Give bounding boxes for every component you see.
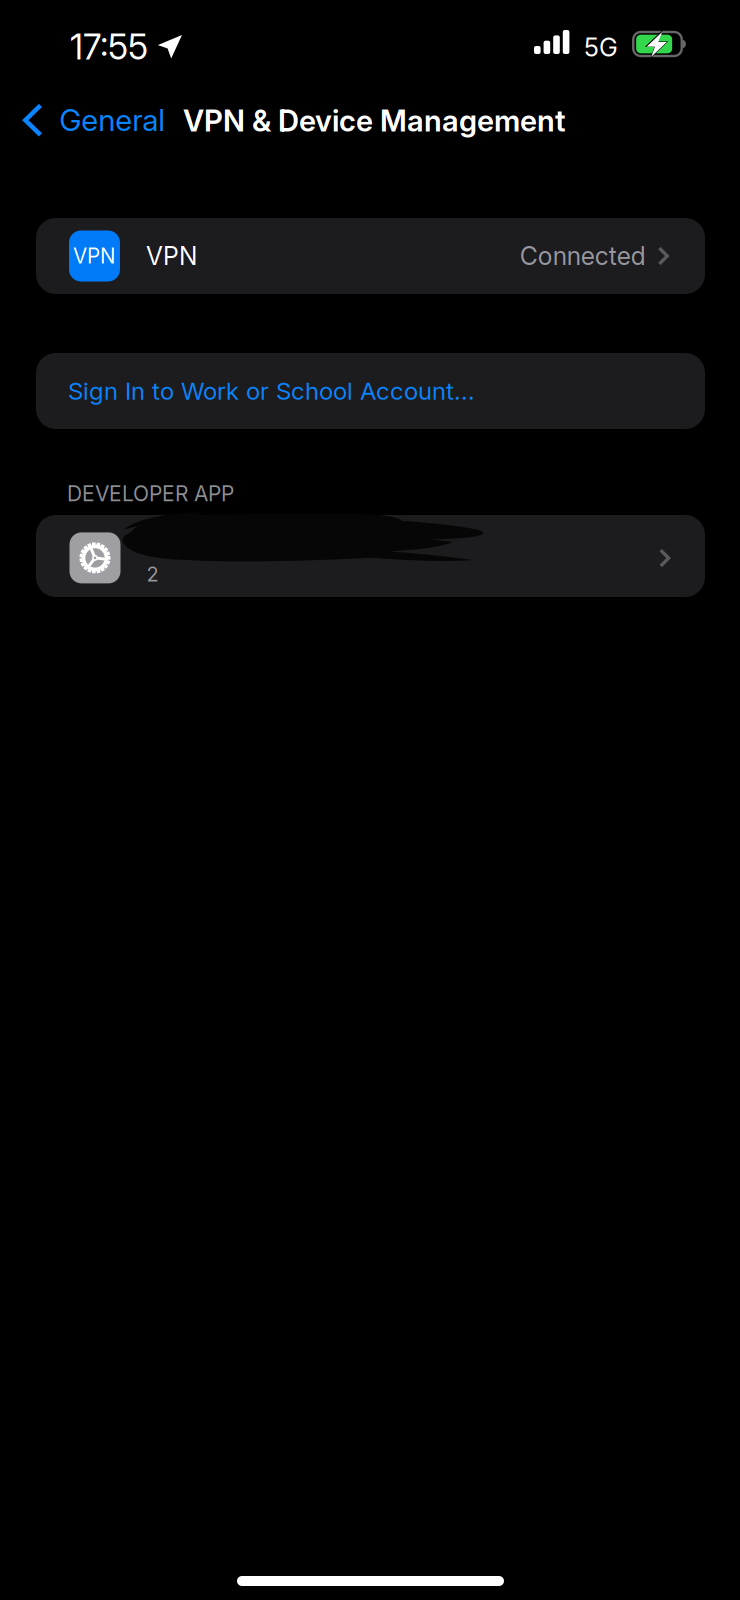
staticText: VPN & Device Management bbox=[183, 103, 566, 139]
staticText: General bbox=[59, 102, 165, 138]
staticText: VPN bbox=[146, 241, 197, 271]
button[interactable]: Sign In to Work or School Account... bbox=[36, 353, 705, 429]
staticText: DEVELOPER APP bbox=[67, 481, 234, 506]
staticText: 17:55 bbox=[70, 26, 148, 68]
staticText: 5G bbox=[584, 32, 618, 63]
button[interactable]: Enterprise App bbox=[36, 515, 705, 597]
staticText: 2 bbox=[146, 562, 158, 586]
staticText: Enterprise App bbox=[146, 531, 317, 561]
button[interactable]: General bbox=[0, 94, 179, 146]
staticText: VPN bbox=[73, 243, 116, 268]
staticText: Connected bbox=[520, 241, 646, 271]
staticText: Sign In to Work or School Account... bbox=[68, 376, 475, 406]
button[interactable]: VPN bbox=[36, 218, 705, 294]
